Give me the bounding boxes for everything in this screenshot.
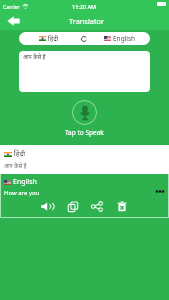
button[interactable]: हिंदी [0,145,169,174]
staticText: How are you [4,189,40,197]
button[interactable]: English [1,174,168,217]
button[interactable]: Speak [39,198,55,214]
staticText: Carrier [3,3,20,10]
button[interactable]: Back [5,13,21,29]
button[interactable]: More options [154,185,166,197]
button[interactable]: Swap languages [79,32,89,45]
button[interactable]: Tap to Speak [72,100,97,125]
staticText: English [113,34,136,43]
button[interactable]: Copy [64,198,80,214]
staticText: हिंदी [14,149,26,159]
staticText: Translator [69,16,105,26]
staticText: 11:20 AM [72,3,97,10]
staticText: आप कैसे हैं [4,162,27,169]
button[interactable]: English [89,32,150,45]
button[interactable]: Share [89,198,105,214]
staticText: Tap to Speak [65,128,104,137]
button[interactable]: हिंदी [19,32,79,45]
staticText: हिंदी [48,34,59,43]
button[interactable]: Delete [114,198,130,214]
button[interactable]: आप कैसे हैं [19,51,150,92]
staticText: आप कैसे हैं [23,53,46,60]
staticText: English [13,177,37,187]
